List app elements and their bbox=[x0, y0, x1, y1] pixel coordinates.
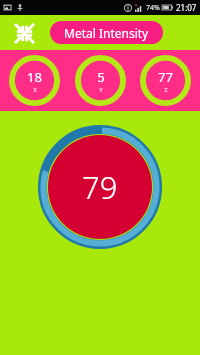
staticText: Y bbox=[99, 86, 103, 94]
button[interactable]: 77 bbox=[140, 55, 191, 106]
staticText: 5 bbox=[97, 68, 105, 86]
staticText: 18 bbox=[27, 68, 42, 86]
button[interactable]: 18 bbox=[9, 55, 60, 106]
button[interactable]: 5 bbox=[75, 55, 126, 106]
staticText: Metal Intensity bbox=[64, 25, 149, 41]
button[interactable]: Collapse bbox=[11, 20, 37, 46]
staticText: X bbox=[33, 86, 37, 94]
staticText: 74% bbox=[146, 3, 160, 13]
button[interactable]: Metal Intensity bbox=[50, 21, 163, 44]
staticText: 21:07 bbox=[176, 2, 197, 13]
staticText: 79 bbox=[82, 166, 118, 208]
button[interactable]: 79 bbox=[38, 125, 162, 249]
staticText: 77 bbox=[158, 68, 173, 86]
staticText: Z bbox=[164, 86, 168, 94]
